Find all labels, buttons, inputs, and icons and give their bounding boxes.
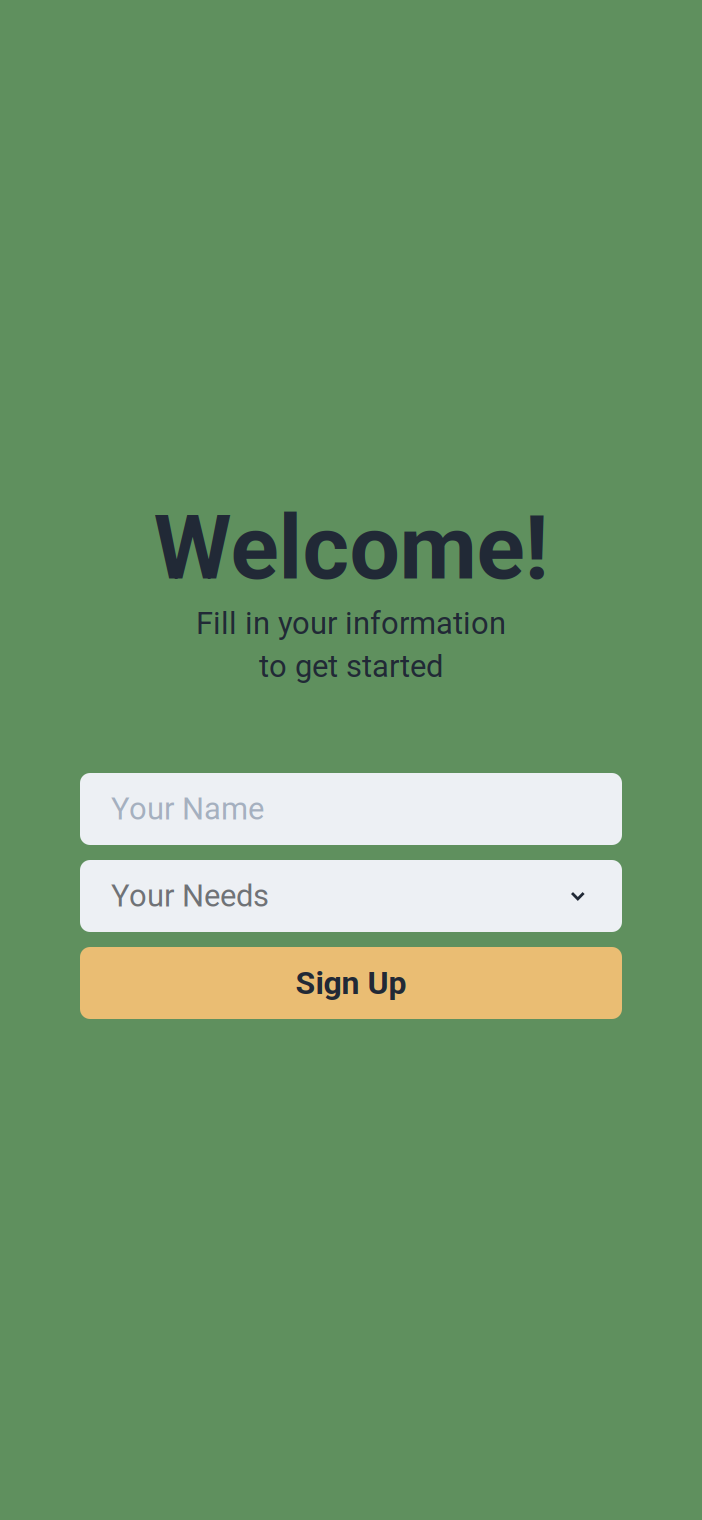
staticText: Your Needs xyxy=(111,878,269,914)
button[interactable]: Your Needs xyxy=(80,860,622,932)
staticText: Your Name xyxy=(111,791,264,827)
button[interactable]: Your Name xyxy=(80,773,622,845)
staticText: Welcome! xyxy=(153,496,548,600)
staticText: to get started xyxy=(259,648,443,685)
staticText: Fill in your information xyxy=(196,605,506,642)
button[interactable]: Sign Up xyxy=(80,947,622,1019)
staticText: Sign Up xyxy=(295,964,406,1002)
